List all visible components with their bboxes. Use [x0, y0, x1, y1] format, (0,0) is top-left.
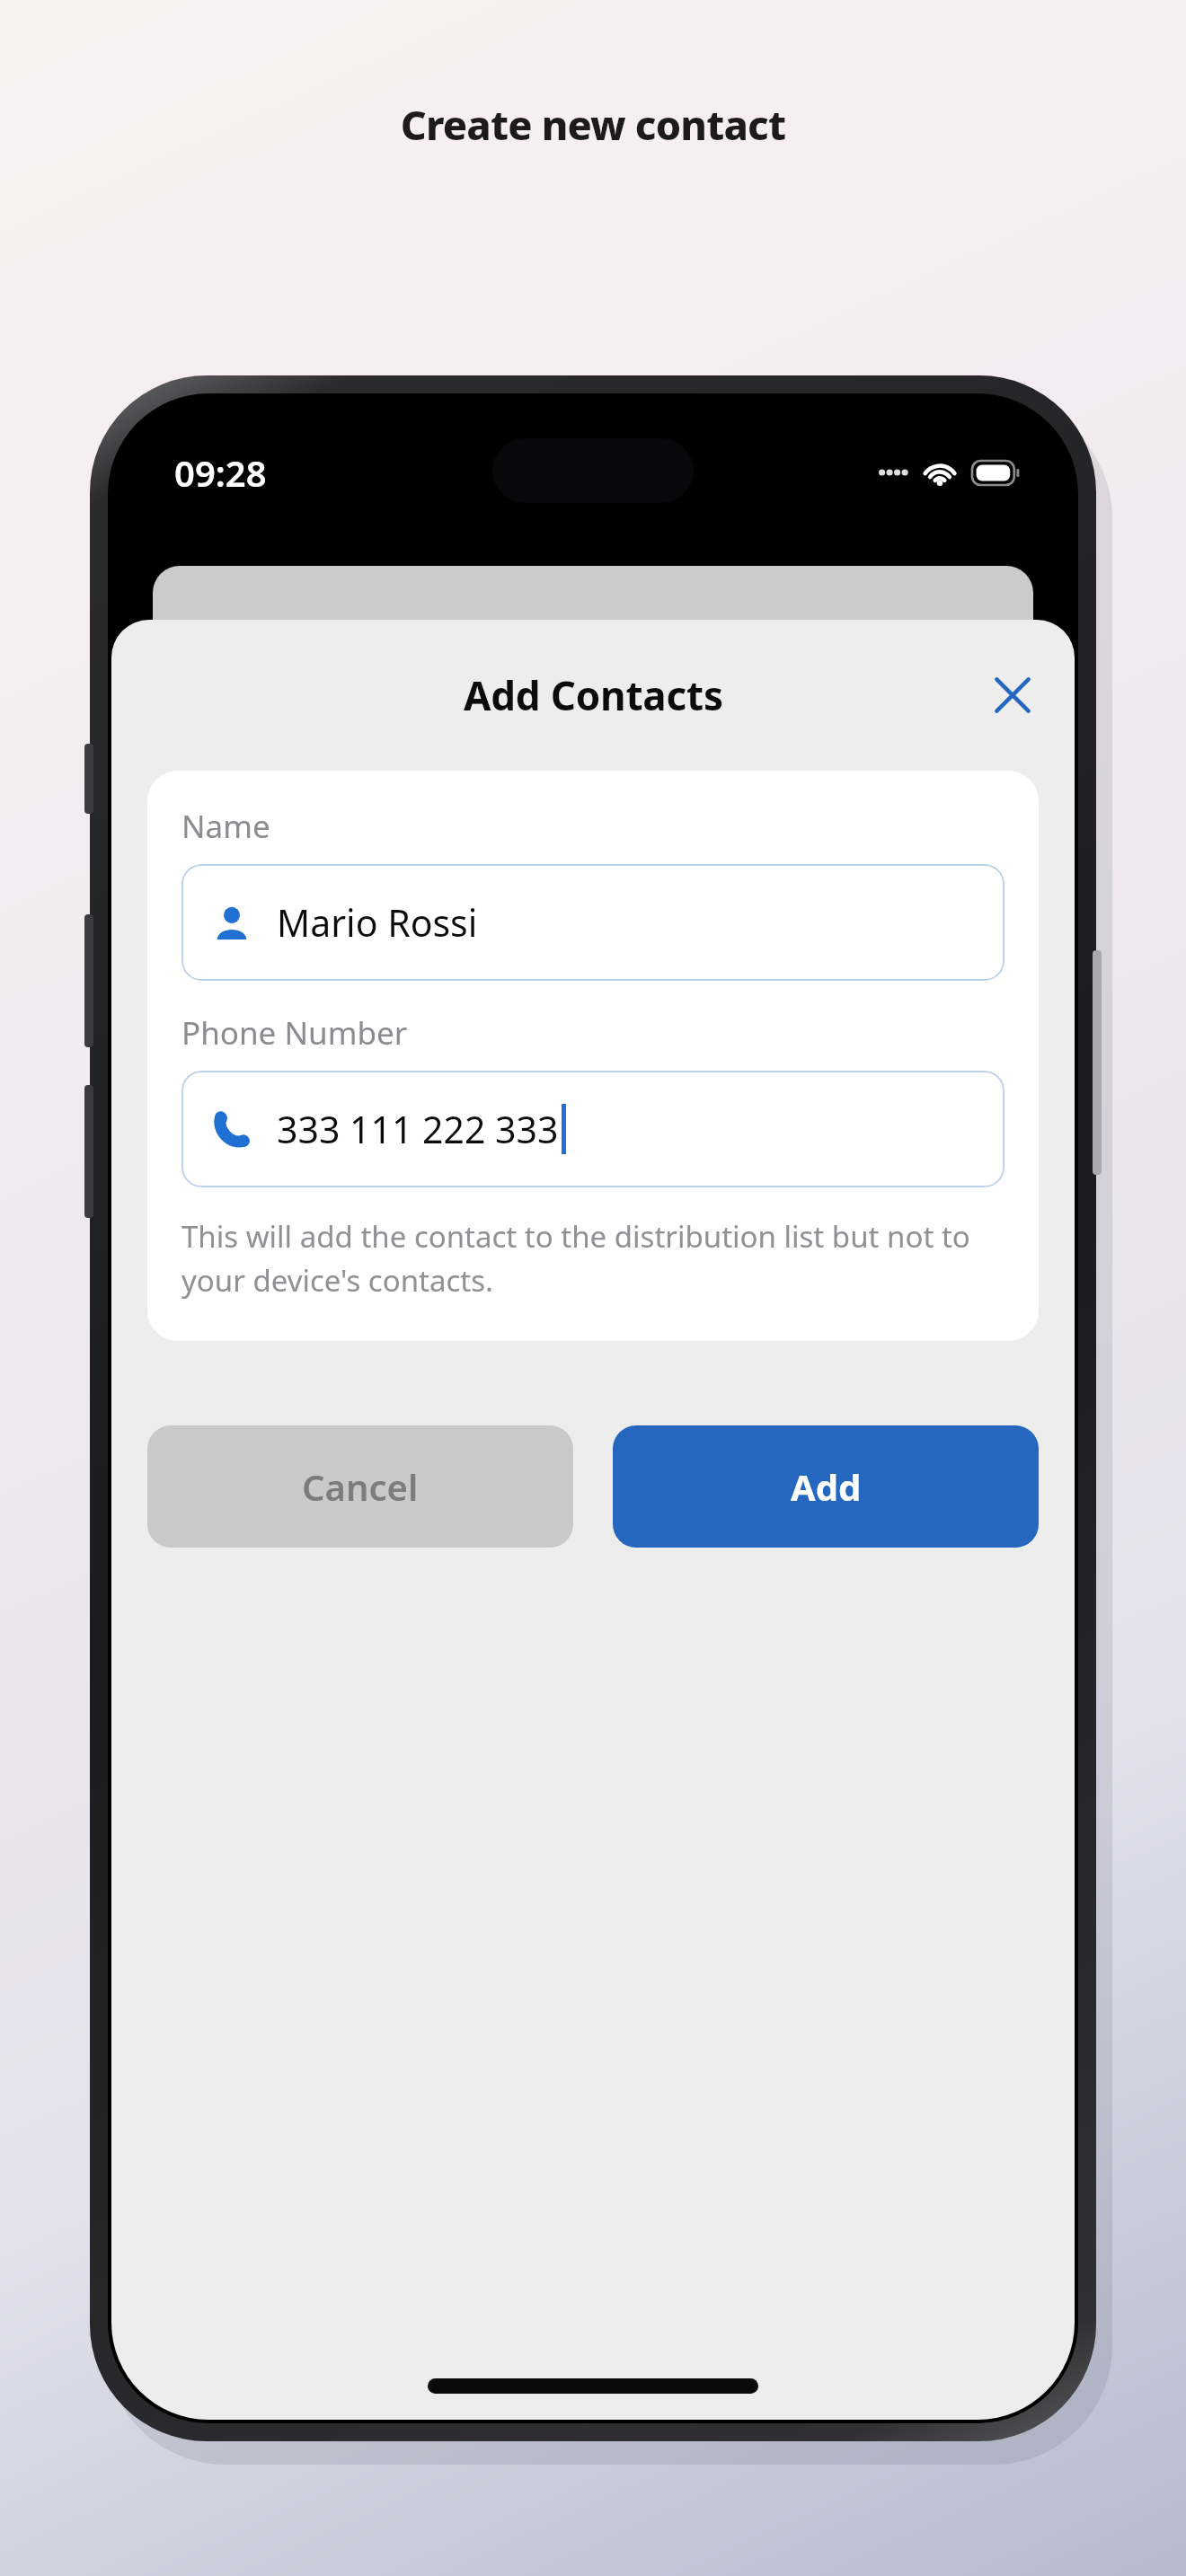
staticText: Mario Rossi	[277, 897, 478, 948]
staticText: This will add the contact to the distrib…	[181, 1216, 1005, 1300]
button[interactable]: 333 111 222 333	[181, 1071, 1005, 1187]
button[interactable]: Close	[972, 655, 1053, 736]
staticText: 09:28	[174, 448, 267, 497]
staticText: Add Contacts	[464, 668, 723, 722]
staticText: 333 111 222 333	[277, 1104, 559, 1154]
button[interactable]: Cancel	[147, 1425, 573, 1548]
button[interactable]: Mario Rossi	[181, 864, 1005, 981]
staticText: Create new contact	[0, 97, 1186, 152]
button[interactable]: Add	[613, 1425, 1039, 1548]
staticText: Phone Number	[181, 1011, 408, 1054]
staticText: Name	[181, 805, 270, 848]
staticText: Add	[791, 1462, 862, 1511]
staticText: Cancel	[302, 1462, 419, 1511]
